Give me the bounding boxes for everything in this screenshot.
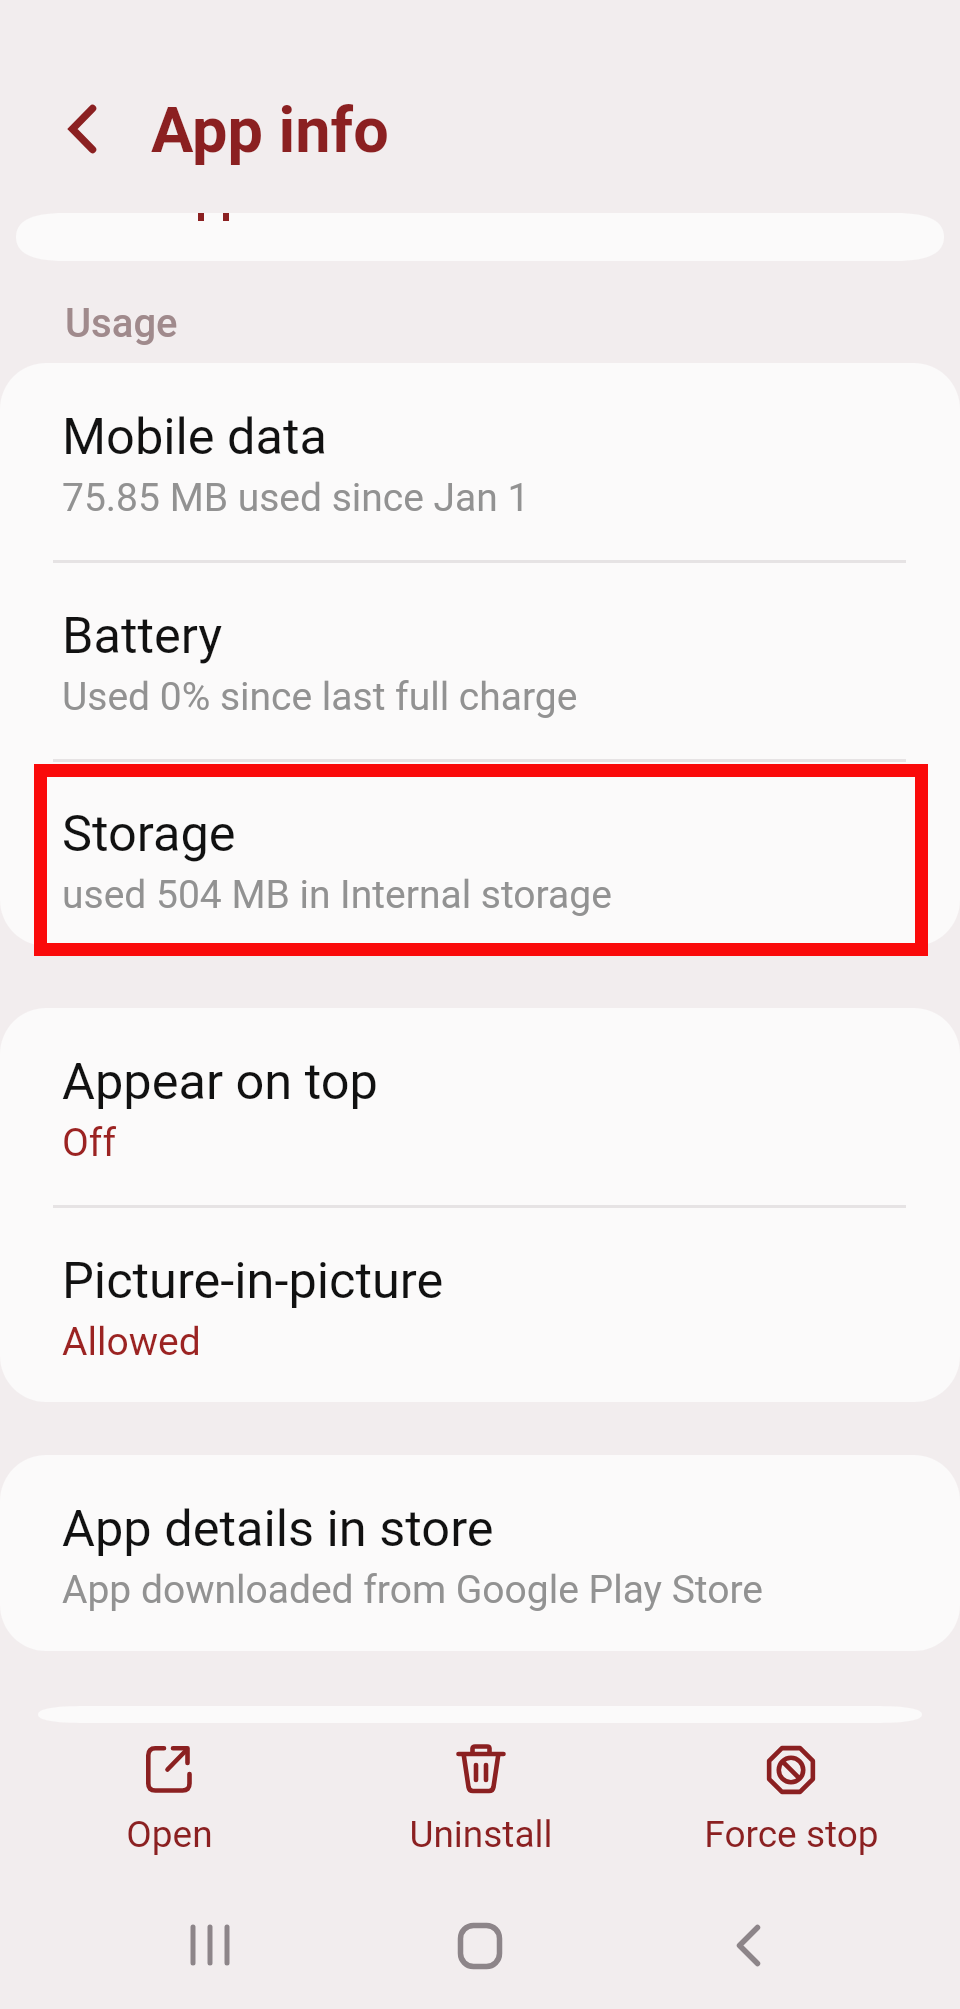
button[interactable]: Force stop <box>660 1726 922 1866</box>
button[interactable]: Mobile data <box>0 363 960 560</box>
staticText: 75.85 MB used since Jan 1 <box>62 475 530 521</box>
button[interactable]: App details in store <box>0 1455 960 1651</box>
button[interactable]: Navigate up <box>43 90 121 168</box>
staticText: used 504 MB in Internal storage <box>62 872 612 918</box>
staticText: Open <box>126 1813 213 1856</box>
staticText: Force stop <box>704 1813 879 1856</box>
staticText: Mobile data <box>62 407 328 466</box>
button[interactable]: Picture-in-picture <box>0 1207 960 1402</box>
staticText: Appear on top <box>62 1052 378 1111</box>
staticText: Battery <box>62 606 223 665</box>
button[interactable]: Home <box>425 1890 535 2000</box>
button[interactable]: Appear on top <box>0 1008 960 1205</box>
staticText: Allowed <box>62 1319 201 1365</box>
staticText: Uninstall <box>409 1813 553 1856</box>
staticText: Used 0% since last full charge <box>62 674 578 720</box>
staticText: Picture-in-picture <box>62 1251 444 1310</box>
button[interactable]: Uninstall <box>350 1726 612 1866</box>
staticText: App downloaded from Google Play Store <box>62 1567 764 1613</box>
staticText: App details in store <box>62 1499 494 1558</box>
button[interactable]: Battery <box>0 562 960 759</box>
button[interactable]: Storage <box>0 760 960 946</box>
button[interactable]: Back <box>695 1890 805 2000</box>
staticText: Usage <box>65 300 178 347</box>
button[interactable]: Recent apps <box>155 1890 265 2000</box>
button[interactable]: Open <box>38 1726 300 1866</box>
staticText: Off <box>62 1120 116 1166</box>
staticText: App info <box>151 94 389 168</box>
staticText: Storage <box>62 804 236 863</box>
